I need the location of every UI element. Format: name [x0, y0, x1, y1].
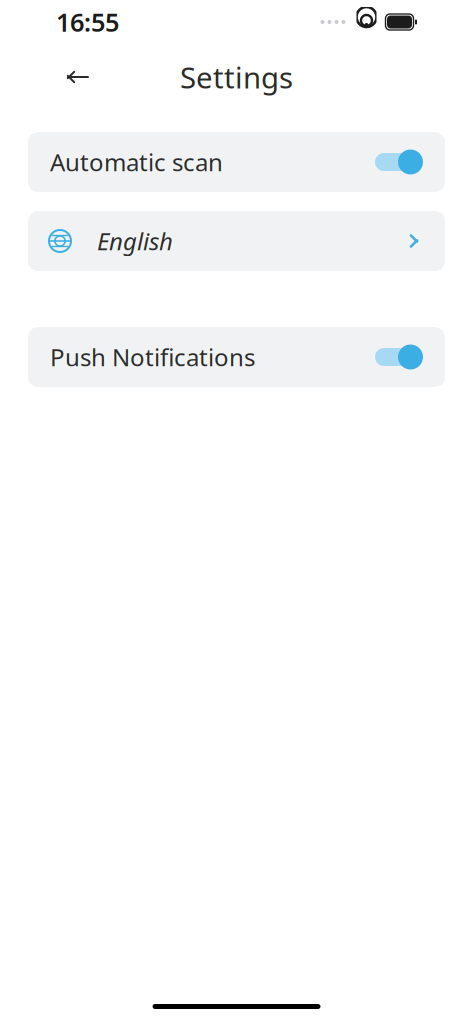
button[interactable]: Push Notifications: [28, 327, 445, 387]
staticText: 16:55: [56, 5, 119, 39]
staticText: English: [97, 225, 173, 257]
button[interactable]: English: [28, 211, 445, 271]
button[interactable]: Automatic scan: [28, 132, 445, 192]
button[interactable]: Back: [56, 55, 100, 99]
staticText: Automatic scan: [50, 146, 223, 178]
staticText: Push Notifications: [50, 341, 255, 373]
staticText: Settings: [180, 57, 293, 96]
